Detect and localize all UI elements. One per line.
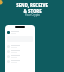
staticText: Your Crypto — [25, 13, 40, 17]
staticText: SEND, RECEIVE — [16, 2, 48, 8]
staticText: & STORE — [23, 8, 42, 14]
